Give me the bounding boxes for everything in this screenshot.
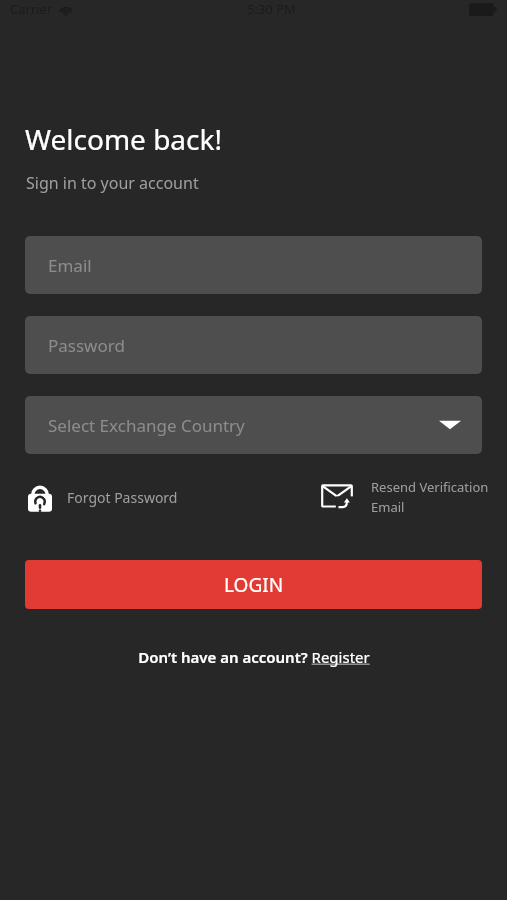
staticText: Carrier [10,0,53,18]
staticText: Select Exchange Country [48,414,245,437]
staticText: Email [48,254,92,277]
staticText: Forgot Password [67,488,178,507]
staticText: Resend Verification [371,478,489,496]
button[interactable]: Forgot Password [25,475,178,519]
staticText: Don’t have an account? Register [138,647,370,667]
button[interactable]: Resend Verification [321,474,489,520]
button[interactable]: Don’t have an account? Register [126,641,382,673]
staticText: LOGIN [224,572,284,598]
button[interactable]: LOGIN [25,560,482,609]
staticText: Email [371,498,405,516]
button[interactable]: Password [25,316,482,374]
button[interactable]: Select Exchange Country [25,396,482,454]
other: Wi-Fi [58,3,74,16]
staticText: Sign in to your account [26,172,199,194]
staticText: Welcome back! [25,120,222,158]
button[interactable]: Email [25,236,482,294]
other: Battery [469,3,497,16]
staticText: Password [48,334,125,357]
staticText: 5:30 PM [247,0,296,18]
